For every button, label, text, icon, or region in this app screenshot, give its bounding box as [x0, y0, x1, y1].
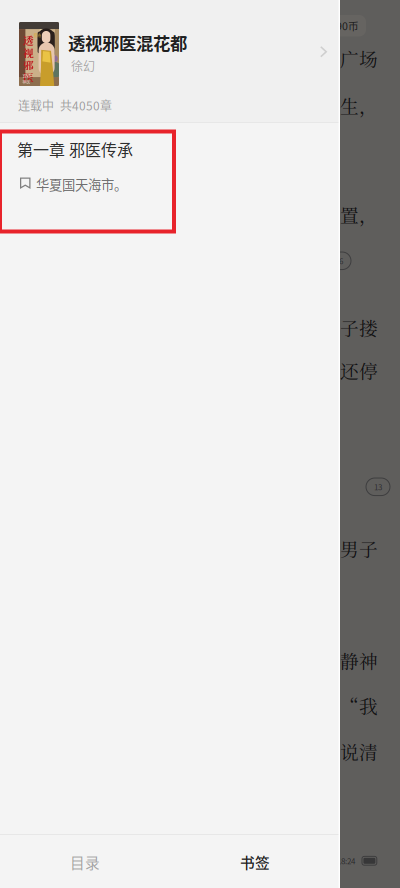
- staticText: 华夏国天海市。: [36, 174, 127, 194]
- staticText: 少年快步上前，开口唤住了那名妇人；男子: [17, 535, 378, 562]
- staticText: 18:24: [337, 855, 355, 867]
- staticText: 13: [374, 481, 382, 493]
- staticText: 邪: [23, 57, 34, 72]
- staticText: 妇人回过头，一脸疑惑地打量着他。凝静神: [17, 647, 378, 674]
- staticText: 视: [23, 45, 34, 60]
- staticText: 少年目光缓慢掠过广场上的每一个的位置，: [17, 201, 378, 228]
- staticText: 情认真的少年在片刻之后他才轻声道：“我: [17, 692, 378, 719]
- staticText: 午后的阳光毫不吝啬地洒在天海市中心广场: [17, 45, 378, 72]
- staticText: 透视邪医混花都: [68, 30, 187, 55]
- staticText: 徐幻: [71, 57, 95, 74]
- staticText: 玄幻: [22, 73, 30, 79]
- staticText: 看您面色发黄、眼下浮肿，能不能跟我说清: [17, 738, 378, 765]
- staticText: 着大包小包的妇人在台阶边上歇了脚步还停: [17, 357, 378, 384]
- staticText: 他刚来到这座城市。: [17, 138, 188, 165]
- staticText: 医: [23, 69, 34, 85]
- staticText: 上，熙攘人群里站着一个白衬衫的男学生，: [17, 92, 378, 119]
- button[interactable]: 第一章 邪医传承: [0, 0, 174, 100]
- staticText: 书签: [240, 851, 270, 873]
- staticText: 剩余 190币: [306, 18, 359, 33]
- staticText: 都市: [33, 33, 41, 38]
- staticText: 连载中 共4050章: [18, 96, 112, 114]
- staticText: 神医: [22, 79, 30, 85]
- staticText: 第一章 邪医传承: [17, 137, 133, 161]
- staticText: 26: [335, 255, 343, 267]
- button[interactable]: 目录: [0, 835, 170, 888]
- button[interactable]: 书签: [170, 835, 340, 888]
- staticText: 目录: [70, 851, 100, 873]
- staticText: 透: [23, 33, 34, 48]
- staticText: 他看见一名抱着孩子、背上还搂着包袱子搂: [17, 314, 378, 341]
- button[interactable]: 透: [0, 0, 340, 122]
